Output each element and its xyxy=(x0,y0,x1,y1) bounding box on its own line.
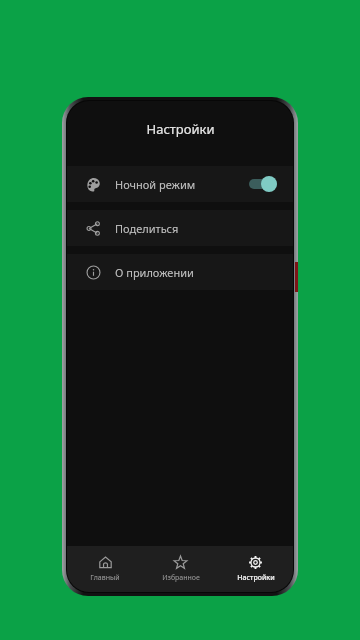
staticText: Ночной режим xyxy=(115,177,196,192)
button[interactable]: Поделиться xyxy=(67,210,293,246)
staticText: Поделиться xyxy=(115,221,179,236)
staticText: Настройки xyxy=(237,573,275,583)
button[interactable]: Ночной режим xyxy=(67,166,293,202)
staticText: Настройки xyxy=(146,120,215,138)
button[interactable]: Ночной режим xyxy=(249,176,277,192)
button[interactable]: О приложении xyxy=(67,254,293,290)
staticText: Главный xyxy=(90,573,120,583)
button[interactable]: Избранное xyxy=(143,546,218,592)
button[interactable]: Настройки xyxy=(218,546,293,592)
button[interactable]: Главный xyxy=(67,546,143,592)
staticText: Избранное xyxy=(162,573,200,583)
staticText: О приложении xyxy=(115,265,194,280)
